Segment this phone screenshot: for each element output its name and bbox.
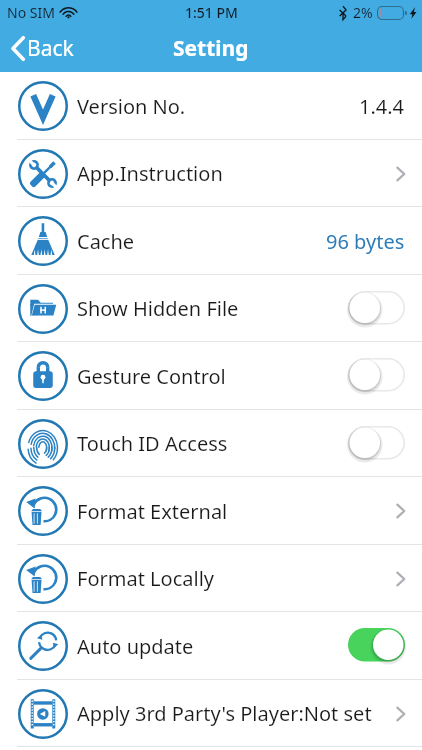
staticText: Touch ID Access (77, 430, 228, 457)
staticText: Format Locally (77, 565, 214, 592)
button[interactable]: App.Instruction (0, 140, 422, 207)
button[interactable]: Format Locally (0, 545, 422, 612)
button[interactable]: Apply 3rd Party's Player:Not set (0, 680, 422, 747)
staticText: Format External (77, 498, 228, 525)
button[interactable]: Gesture Control off (348, 358, 405, 394)
other: App.Instruction (396, 167, 405, 181)
button[interactable]: Touch ID Access off (348, 426, 405, 462)
staticText: 2% (353, 3, 373, 22)
button[interactable]: Show Hidden File (0, 275, 422, 342)
staticText: Back (27, 34, 74, 63)
button[interactable]: Show Hidden File off (348, 291, 405, 327)
button[interactable]: Gesture Control (0, 342, 422, 410)
button[interactable]: Auto update on (348, 628, 405, 664)
staticText: 96 bytes (326, 228, 405, 255)
other: Apply 3rd Party's Player:Not set (396, 707, 405, 721)
button[interactable]: Auto update (0, 612, 422, 680)
staticText: Setting (173, 34, 249, 63)
staticText: Apply 3rd Party's Player:Not set (77, 700, 372, 727)
staticText: Gesture Control (77, 363, 226, 390)
button[interactable]: Cache (0, 207, 422, 275)
staticText: 1.4.4 (359, 93, 405, 120)
button[interactable]: Touch ID Access (0, 410, 422, 477)
button[interactable]: Back (0, 26, 88, 71)
staticText: No SIM (7, 3, 55, 22)
staticText: 1:51 PM (185, 3, 238, 22)
staticText: App.Instruction (77, 160, 223, 187)
staticText: Auto update (77, 633, 194, 660)
staticText: Cache (77, 228, 135, 255)
staticText: Show Hidden File (77, 295, 239, 322)
staticText: Version No. (77, 93, 186, 120)
button[interactable]: Format External (0, 477, 422, 545)
other: Format External (396, 504, 405, 518)
other: Format Locally (396, 572, 405, 586)
button[interactable]: Version No. (0, 72, 422, 140)
